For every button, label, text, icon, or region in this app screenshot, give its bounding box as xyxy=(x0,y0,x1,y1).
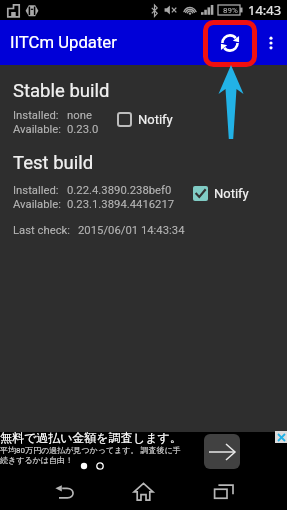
staticText: Test build xyxy=(13,152,94,174)
button[interactable]: Notify xyxy=(193,186,249,201)
button[interactable]: Recent apps xyxy=(199,473,248,510)
staticText: Stable build xyxy=(13,80,110,102)
staticText: 14:43 xyxy=(248,1,282,19)
staticText: none xyxy=(67,109,92,122)
button[interactable]: Notify xyxy=(117,112,173,127)
button[interactable]: Refresh xyxy=(205,20,254,65)
staticText: Available: xyxy=(13,123,62,136)
staticText: 2015/06/01 14:43:34 xyxy=(78,224,185,237)
staticText: Notify xyxy=(214,186,249,201)
button[interactable]: Close advertisement xyxy=(275,431,287,443)
button[interactable]: More options xyxy=(254,20,287,65)
staticText: 続きするかは自由！ xyxy=(0,455,73,465)
staticText: 0.23.1.3894.4416217 xyxy=(67,198,175,211)
staticText: Last check: xyxy=(13,224,71,237)
staticText: 0.22.4.3890.238bef0 xyxy=(67,184,172,197)
staticText: IITCm Updater xyxy=(10,33,117,53)
staticText: Installed: xyxy=(13,184,59,197)
staticText: Notify xyxy=(138,112,173,127)
button[interactable]: Back xyxy=(40,473,89,510)
staticText: 無料で過払い金額を調査します。 xyxy=(0,430,182,445)
button[interactable]: Open advertisement xyxy=(204,434,240,469)
staticText: Available: xyxy=(13,198,62,211)
staticText: Installed: xyxy=(13,109,59,122)
staticText: 89% xyxy=(223,6,238,15)
button[interactable]: Home xyxy=(119,473,168,510)
staticText: 0.23.0 xyxy=(67,123,99,136)
staticText: 平均80万円の過払が見つかってます。 調査後に手 xyxy=(0,445,181,455)
